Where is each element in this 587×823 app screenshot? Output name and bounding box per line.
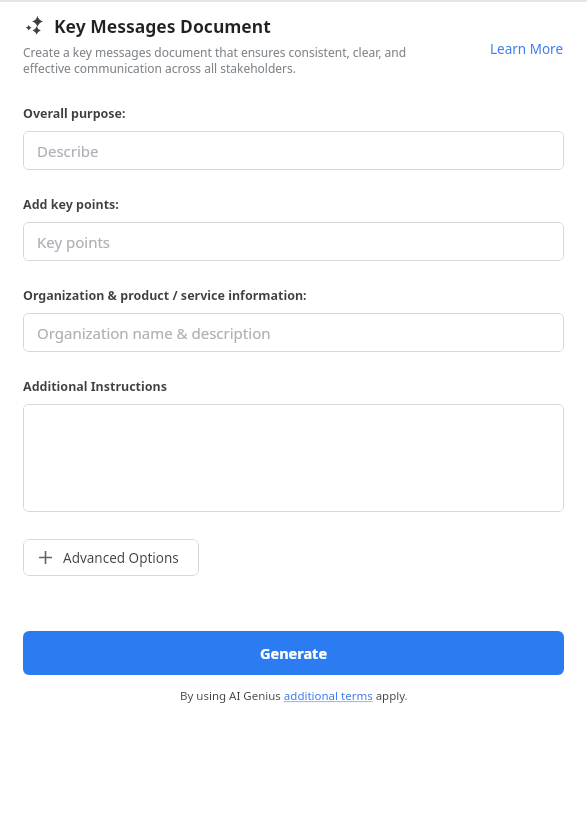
- button[interactable]: Generate: [23, 631, 564, 675]
- staticText: Create a key messages document that ensu…: [23, 44, 435, 77]
- staticText: Organization & product / service informa…: [23, 287, 307, 304]
- staticText: Describe: [37, 141, 99, 161]
- staticText: Advanced Options: [63, 549, 179, 567]
- button[interactable]: Advanced Options: [23, 539, 199, 576]
- staticText: Key points: [37, 232, 111, 252]
- button[interactable]: Organization name & description: [23, 313, 564, 352]
- button[interactable]: Describe: [23, 131, 564, 170]
- button[interactable]: [23, 404, 564, 512]
- staticText: Additional Instructions: [23, 378, 167, 395]
- staticText: Key Messages Document: [54, 14, 271, 38]
- staticText: Learn More: [490, 40, 564, 58]
- staticText: Organization name & description: [37, 323, 271, 343]
- staticText: Overall purpose:: [23, 105, 126, 122]
- staticText: Add key points:: [23, 196, 119, 213]
- button[interactable]: Learn More: [490, 40, 564, 58]
- staticText: By using AI Genius additional terms appl…: [180, 688, 408, 704]
- staticText: Generate: [260, 643, 328, 663]
- button[interactable]: Key points: [23, 222, 564, 261]
